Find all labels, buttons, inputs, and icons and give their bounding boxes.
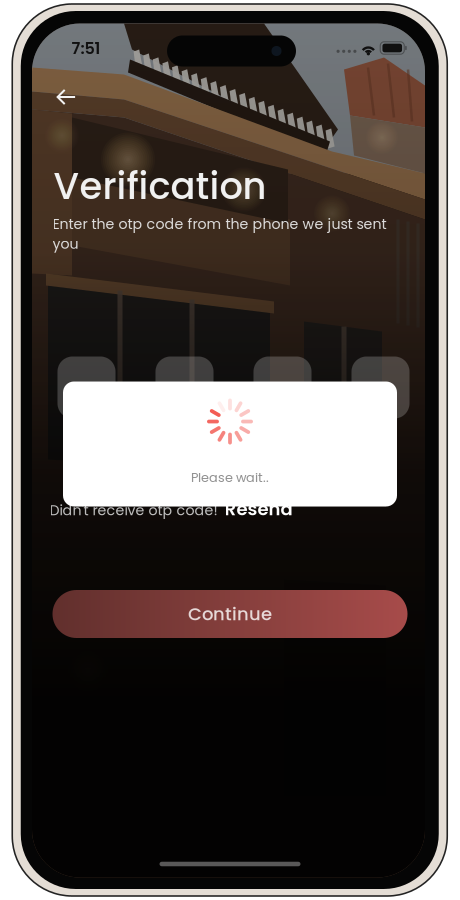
staticText: Enter the otp code from the phone we jus…: [52, 214, 386, 254]
staticText: Verification: [53, 160, 266, 212]
staticText: Didn't receive otp code!: [49, 500, 217, 520]
staticText: 7:51: [71, 37, 100, 60]
button[interactable]: Resend: [224, 496, 292, 522]
button[interactable]: OTP digit: [57, 356, 115, 418]
button[interactable]: Continue: [52, 590, 407, 638]
button[interactable]: OTP digit: [351, 356, 409, 418]
button[interactable]: Back: [42, 76, 90, 118]
staticText: Please wait..: [191, 468, 269, 486]
staticText: Resend: [224, 496, 292, 522]
staticText: Continue: [188, 601, 272, 627]
button[interactable]: OTP digit: [253, 356, 311, 418]
button[interactable]: OTP digit: [155, 356, 213, 418]
